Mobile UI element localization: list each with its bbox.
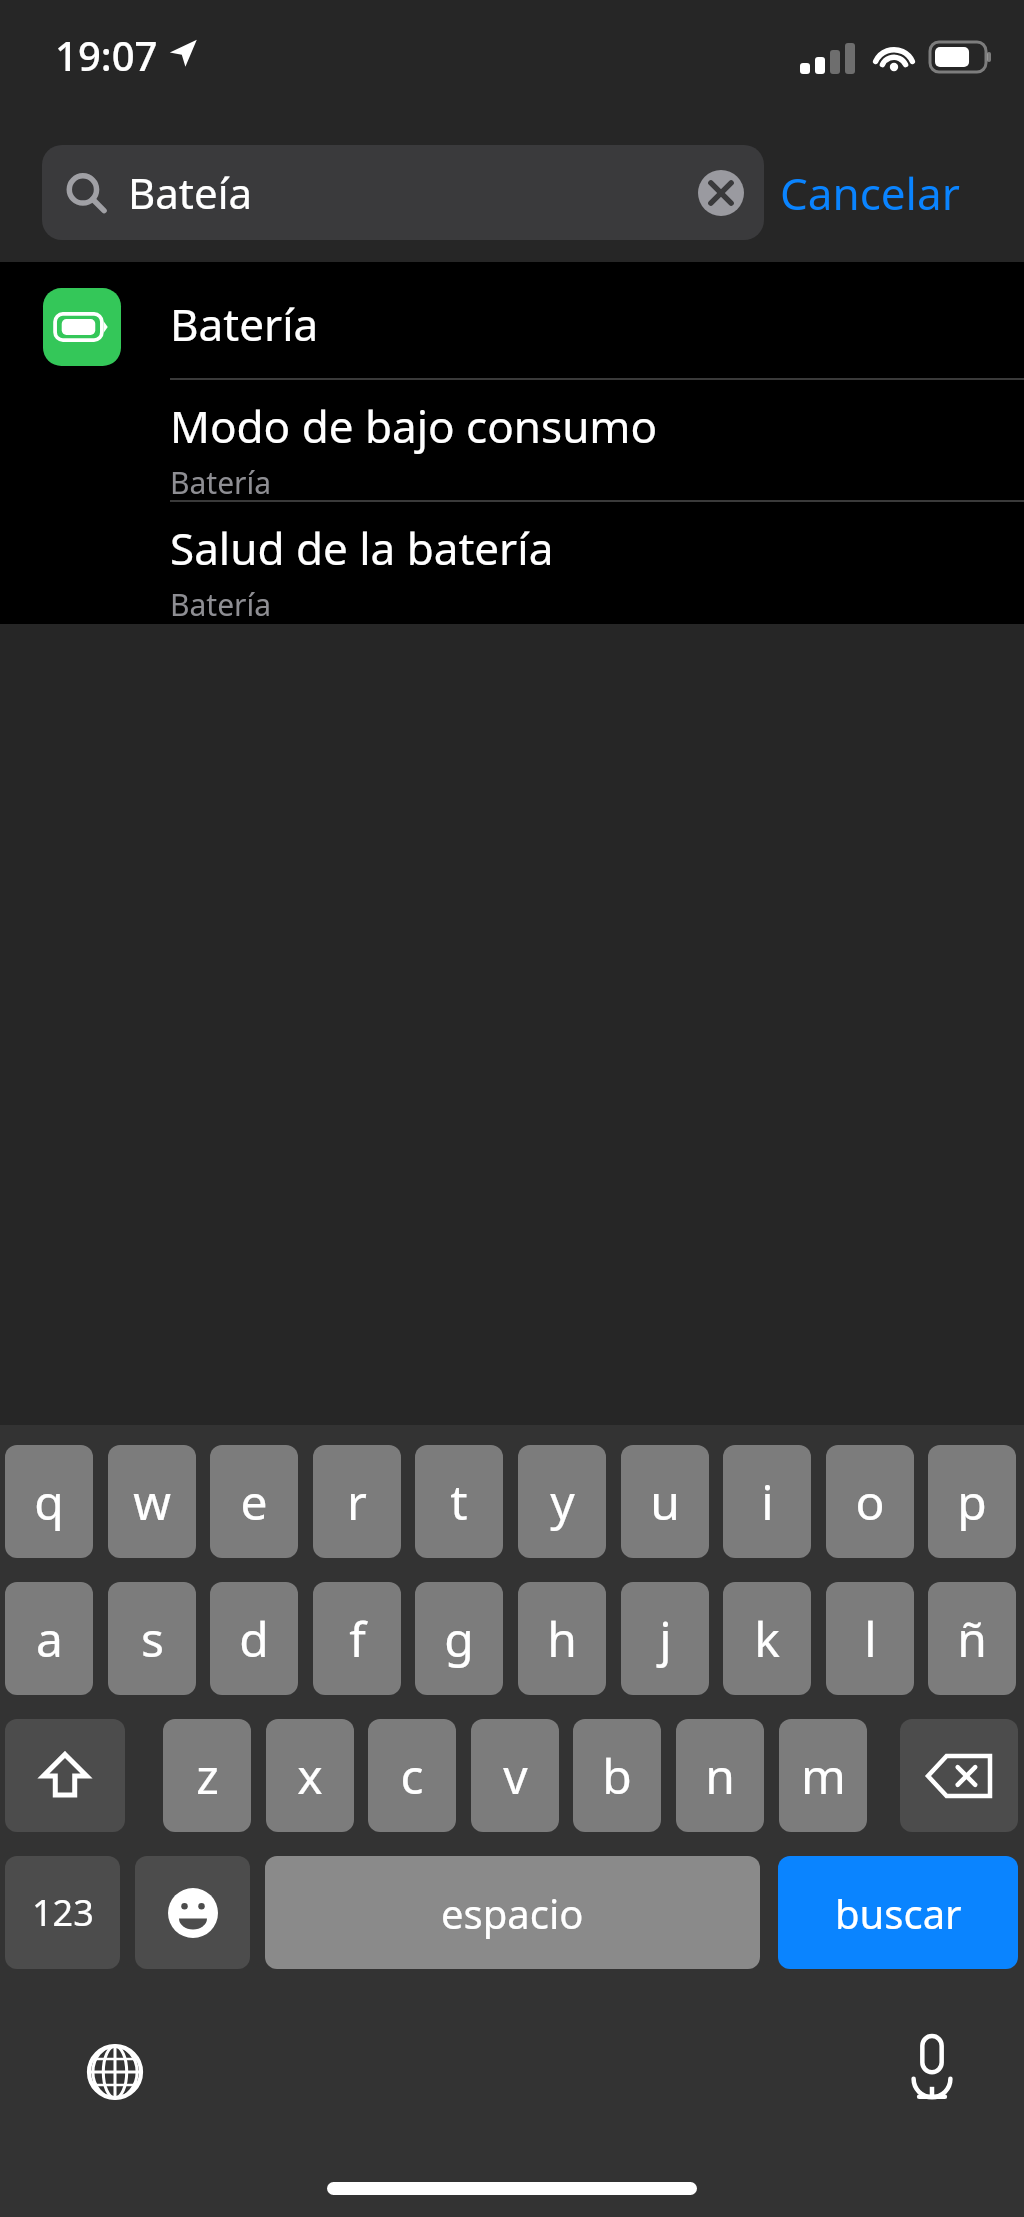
button[interactable]: j xyxy=(621,1582,709,1695)
button[interactable]: buscar xyxy=(778,1856,1018,1969)
button[interactable]: d xyxy=(210,1582,298,1695)
staticText: u xyxy=(650,1469,680,1534)
staticText: r xyxy=(347,1469,367,1534)
staticText: espacio xyxy=(441,1886,584,1940)
staticText: Bateía xyxy=(128,164,253,221)
button[interactable]: Modo de bajo consumo xyxy=(0,378,1024,500)
button[interactable]: espacio xyxy=(265,1856,760,1969)
button[interactable]: 123 xyxy=(5,1856,120,1969)
staticText: w xyxy=(133,1469,171,1534)
button[interactable]: x xyxy=(266,1719,354,1832)
button[interactable]: Cambiar idioma xyxy=(78,2035,152,2109)
staticText: t xyxy=(450,1469,468,1534)
button[interactable]: p xyxy=(928,1445,1016,1558)
button[interactable]: Emoji xyxy=(135,1856,250,1969)
staticText: s xyxy=(141,1606,164,1671)
button[interactable]: Borrar xyxy=(900,1719,1018,1832)
button[interactable]: z xyxy=(163,1719,251,1832)
button[interactable]: m xyxy=(779,1719,867,1832)
button[interactable]: y xyxy=(518,1445,606,1558)
button[interactable]: r xyxy=(313,1445,401,1558)
button[interactable]: u xyxy=(621,1445,709,1558)
button[interactable]: t xyxy=(415,1445,503,1558)
button[interactable]: n xyxy=(676,1719,764,1832)
button[interactable]: f xyxy=(313,1582,401,1695)
staticText: d xyxy=(239,1606,269,1671)
button[interactable]: w xyxy=(108,1445,196,1558)
button[interactable]: Mayúsculas xyxy=(5,1719,125,1832)
staticText: o xyxy=(855,1469,885,1534)
button[interactable]: v xyxy=(471,1719,559,1832)
button[interactable]: a xyxy=(5,1582,93,1695)
button[interactable]: e xyxy=(210,1445,298,1558)
staticText: buscar xyxy=(835,1886,962,1940)
staticText: y xyxy=(550,1469,575,1534)
staticText: f xyxy=(349,1606,366,1671)
staticText: ñ xyxy=(957,1606,987,1671)
button[interactable]: Cancelar xyxy=(780,140,1000,245)
staticText: Batería xyxy=(170,462,272,500)
button[interactable]: q xyxy=(5,1445,93,1558)
staticText: Salud de la batería xyxy=(170,518,554,578)
button[interactable]: Batería xyxy=(0,262,1024,378)
staticText: m xyxy=(801,1743,846,1808)
staticText: 19:07 xyxy=(55,28,158,82)
staticText: p xyxy=(957,1469,987,1534)
staticText: z xyxy=(196,1743,219,1808)
staticText: n xyxy=(705,1743,735,1808)
button[interactable]: s xyxy=(108,1582,196,1695)
staticText: q xyxy=(34,1469,64,1534)
button[interactable]: ñ xyxy=(928,1582,1016,1695)
staticText: c xyxy=(400,1743,424,1808)
staticText: a xyxy=(36,1606,63,1671)
button[interactable]: l xyxy=(826,1582,914,1695)
button[interactable]: Salud de la batería xyxy=(0,500,1024,622)
button[interactable]: o xyxy=(826,1445,914,1558)
staticText: Batería xyxy=(170,584,272,622)
staticText: x xyxy=(297,1743,323,1808)
staticText: h xyxy=(547,1606,577,1671)
staticText: v xyxy=(503,1743,528,1808)
staticText: k xyxy=(754,1606,780,1671)
button[interactable]: Borrar texto xyxy=(696,168,746,218)
staticText: Modo de bajo consumo xyxy=(170,396,658,456)
button[interactable]: Dictado xyxy=(895,2030,969,2104)
staticText: 123 xyxy=(32,1888,94,1937)
staticText: i xyxy=(761,1469,774,1534)
button[interactable]: c xyxy=(368,1719,456,1832)
button[interactable]: i xyxy=(723,1445,811,1558)
staticText: b xyxy=(602,1743,632,1808)
button[interactable]: Bateía xyxy=(42,145,764,240)
button[interactable]: g xyxy=(415,1582,503,1695)
staticText: Batería xyxy=(170,294,319,354)
staticText: e xyxy=(240,1469,268,1534)
staticText: l xyxy=(864,1606,877,1671)
button[interactable]: b xyxy=(573,1719,661,1832)
staticText: Cancelar xyxy=(780,163,960,223)
staticText: g xyxy=(444,1606,474,1671)
button[interactable]: k xyxy=(723,1582,811,1695)
staticText: j xyxy=(659,1606,672,1671)
button[interactable]: h xyxy=(518,1582,606,1695)
